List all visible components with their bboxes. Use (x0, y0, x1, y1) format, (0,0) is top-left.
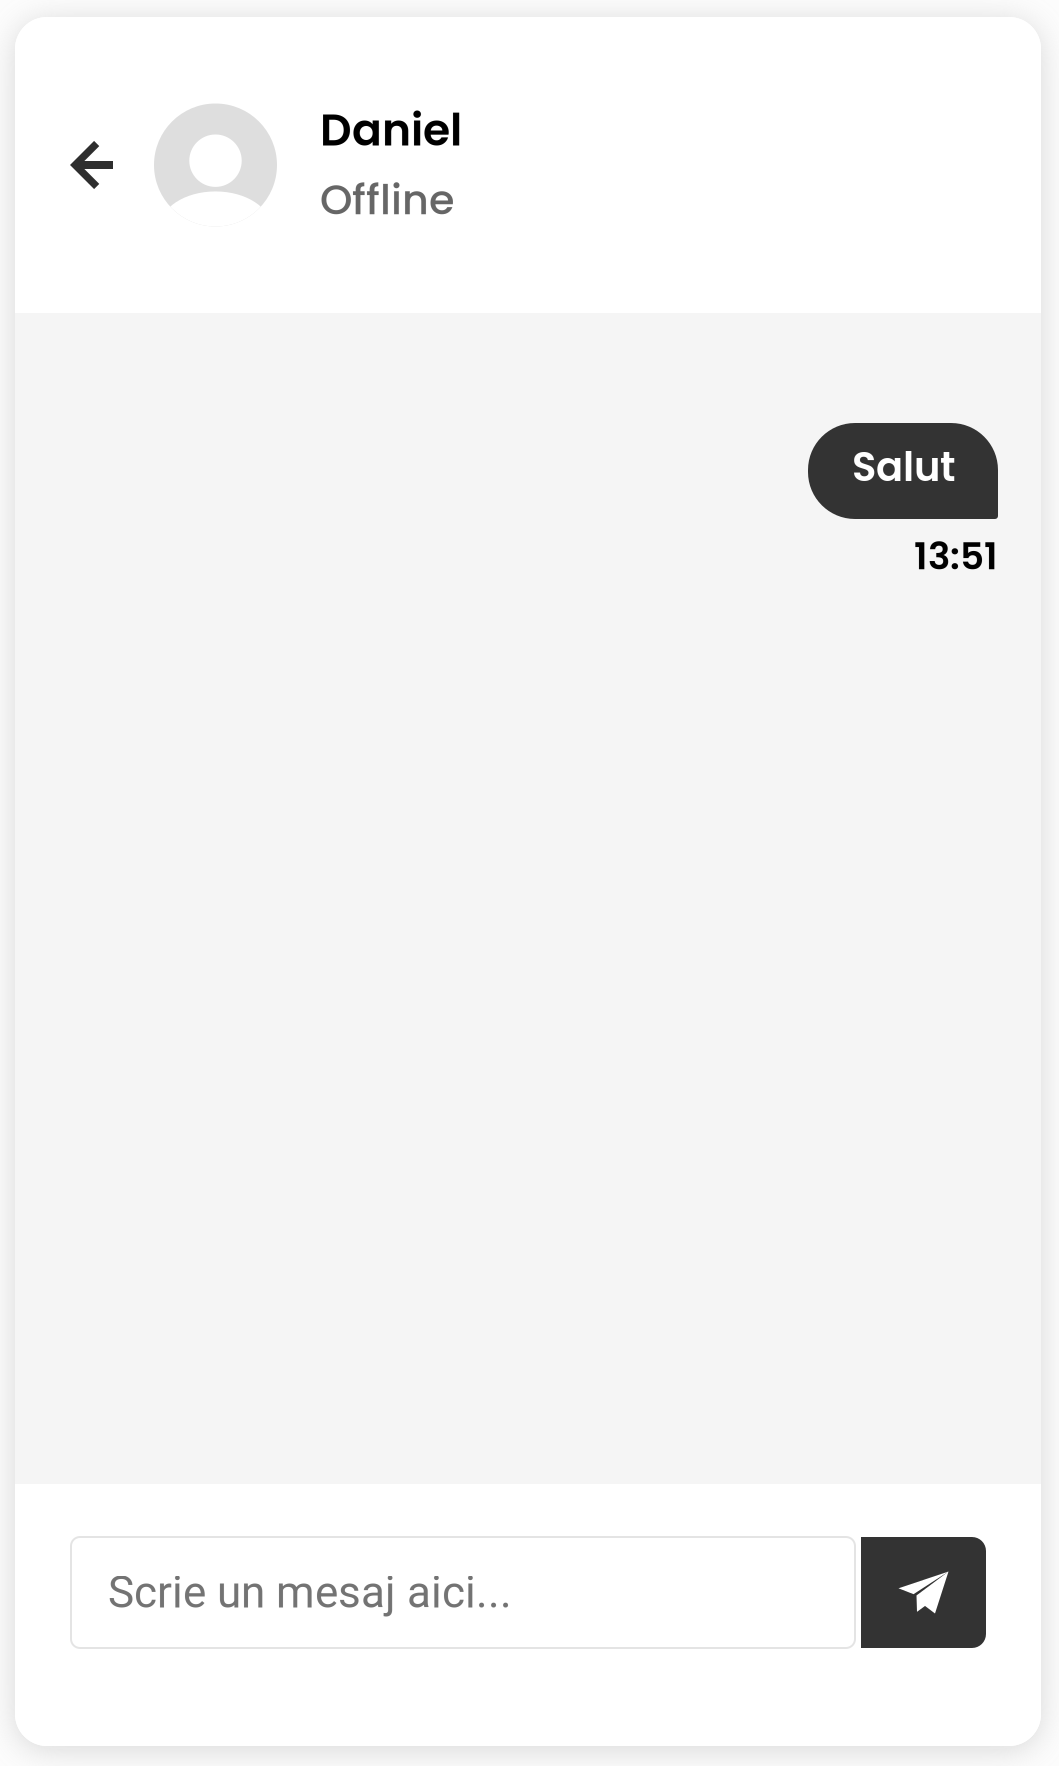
staticText: Scrie un mesaj aici... (108, 1567, 512, 1618)
staticText: Offline (320, 171, 455, 229)
button[interactable]: Back (15, 100, 154, 230)
staticText: Salut (852, 439, 956, 495)
button[interactable]: Send (861, 1537, 986, 1648)
staticText: 13:51 (914, 530, 998, 582)
staticText: Daniel (320, 99, 462, 161)
